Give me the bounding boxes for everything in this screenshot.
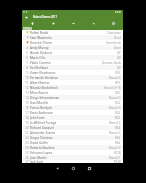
button[interactable]: 14	[22, 95, 123, 100]
button[interactable]: 18	[22, 115, 123, 120]
button[interactable]: 15	[22, 100, 123, 105]
staticText: Gael Monfils	[30, 101, 49, 105]
staticText: R32	[115, 111, 121, 115]
staticText: Round 1	[109, 156, 121, 160]
button[interactable]: 24	[22, 145, 123, 150]
button[interactable]: 22	[22, 135, 123, 140]
button[interactable]: Back	[52, 163, 62, 173]
staticText: R16	[115, 71, 121, 75]
button[interactable]: 4	[22, 45, 123, 50]
staticText: 4	[26, 46, 28, 50]
staticText: Andy Murray	[30, 46, 49, 50]
staticText: 15	[25, 101, 29, 105]
staticText: Alexander Zverev	[30, 131, 56, 135]
button[interactable]: 17	[22, 110, 123, 115]
button[interactable]: 12	[22, 85, 123, 90]
button[interactable]: 16	[22, 105, 123, 110]
staticText: 12	[25, 86, 29, 90]
staticText: Nikoloz Basilashvili	[30, 86, 58, 90]
button[interactable]: 27	[22, 160, 123, 163]
button[interactable]: Stats	[103, 20, 123, 26]
staticText: Stan Wawrinka	[30, 36, 52, 40]
button[interactable]: Stan Wawrinka	[22, 35, 123, 40]
staticText: R128	[114, 151, 121, 155]
button[interactable]: Navigate up	[22, 14, 31, 20]
staticText: 11	[25, 81, 29, 85]
button[interactable]: 13	[22, 90, 123, 95]
staticText: 5	[26, 51, 28, 55]
staticText: R32	[115, 91, 121, 95]
staticText: Roberto Bautista	[30, 146, 55, 150]
button[interactable]: 26	[22, 155, 123, 160]
staticText: 27	[25, 160, 29, 163]
staticText: Semi-finals	[106, 41, 121, 45]
button[interactable]: 11	[22, 80, 123, 85]
staticText: 9	[26, 71, 28, 75]
button[interactable]: 5	[22, 50, 123, 55]
staticText: R64	[115, 136, 121, 140]
staticText: Round 3	[109, 106, 121, 110]
staticText: Champion	[107, 31, 121, 35]
staticText: Pablo Carreno	[30, 61, 51, 65]
staticText: R32	[115, 116, 121, 120]
staticText: Kei Nishikori	[30, 66, 49, 70]
staticText: 14	[25, 96, 29, 100]
staticText: 18	[25, 116, 29, 120]
staticText: Marin Cilic	[30, 56, 46, 60]
staticText: Fernando Verdasco	[30, 76, 58, 80]
staticText: R16	[115, 81, 121, 85]
staticText: Milos Raonic	[30, 91, 49, 95]
button[interactable]: 9	[22, 70, 123, 75]
button[interactable]: Draw	[43, 20, 63, 26]
button[interactable]: Overview	[22, 20, 43, 26]
button[interactable]: 10	[22, 75, 123, 80]
staticText: Round 2	[109, 146, 121, 150]
staticText: QF	[117, 51, 121, 55]
button[interactable]: 8	[22, 65, 123, 70]
button[interactable]: Dominic Thiem	[22, 40, 123, 45]
button[interactable]: Players	[83, 20, 103, 26]
button[interactable]: Recent apps	[84, 163, 94, 173]
staticText: Round 3	[109, 96, 121, 100]
button[interactable]: Results	[63, 20, 83, 26]
staticText: Albert Ramos	[30, 81, 50, 85]
button[interactable]: 21	[22, 130, 123, 135]
staticText: Round 2	[109, 121, 121, 125]
staticText: Semi	[114, 46, 121, 50]
staticText: Round of 16	[104, 86, 121, 90]
staticText: Roland Garros 2017	[33, 15, 58, 19]
staticText: 8	[26, 66, 28, 70]
staticText: Diego Schwartzman	[30, 96, 60, 100]
staticText: 23	[25, 141, 29, 145]
staticText: QF	[117, 56, 121, 60]
staticText: Feliciano Lopez	[30, 151, 53, 155]
staticText: 6	[26, 56, 28, 60]
staticText: Kevin Anderson	[30, 111, 53, 115]
staticText: Tomas Berdych	[30, 106, 53, 110]
staticText: Quarter-finals	[102, 61, 121, 65]
staticText: OPEN	[23, 27, 32, 30]
staticText: QF	[117, 66, 121, 70]
staticText: John Isner	[30, 116, 45, 120]
staticText: R32	[115, 101, 121, 105]
button[interactable]: Rafael Nadal	[22, 30, 123, 35]
button[interactable]: 6	[22, 55, 123, 60]
staticText: 20	[25, 126, 29, 130]
button[interactable]: 23	[22, 140, 123, 145]
button[interactable]: 7	[22, 60, 123, 65]
staticText: Novak Djokovic	[30, 51, 53, 55]
staticText: 19	[25, 121, 29, 125]
button[interactable]: 20	[22, 125, 123, 130]
staticText: R64	[115, 141, 121, 145]
staticText: 26	[25, 156, 29, 160]
staticText: 22	[25, 136, 29, 140]
button[interactable]: 19	[22, 120, 123, 125]
staticText: Jack Sock	[30, 160, 44, 163]
button[interactable]: 25	[22, 150, 123, 155]
staticText: 16	[25, 106, 29, 110]
staticText: Round 4	[109, 76, 121, 80]
staticText: Juan Martin	[30, 156, 47, 160]
staticText: Jo-Wilfried Tsonga	[30, 121, 57, 125]
button[interactable]: Home	[68, 163, 78, 173]
staticText: 21	[25, 131, 29, 135]
